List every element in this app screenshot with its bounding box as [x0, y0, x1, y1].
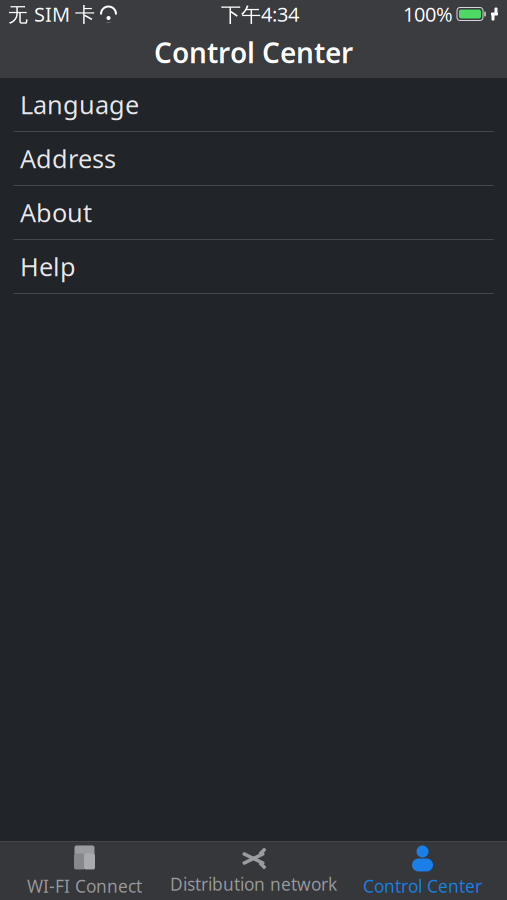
staticText: Distribution network [170, 872, 337, 895]
button[interactable]: Language [0, 78, 507, 132]
button[interactable]: Distribution network [169, 841, 338, 900]
button[interactable]: Address [0, 132, 507, 186]
button[interactable]: WI-FI Connect [0, 841, 169, 900]
staticText: Language [20, 88, 139, 121]
staticText: About [20, 196, 92, 229]
staticText: 100% [403, 1, 453, 27]
button[interactable]: Help [0, 240, 507, 294]
staticText: Address [20, 142, 116, 175]
staticText: Help [20, 250, 76, 283]
button[interactable]: Control Center [338, 841, 507, 900]
staticText: WI-FI Connect [27, 874, 142, 897]
staticText: 无 SIM 卡 [8, 1, 95, 27]
staticText: Control Center [363, 874, 482, 897]
staticText: 下午4:34 [221, 1, 299, 27]
staticText: Control Center [154, 34, 353, 71]
button[interactable]: About [0, 186, 507, 240]
